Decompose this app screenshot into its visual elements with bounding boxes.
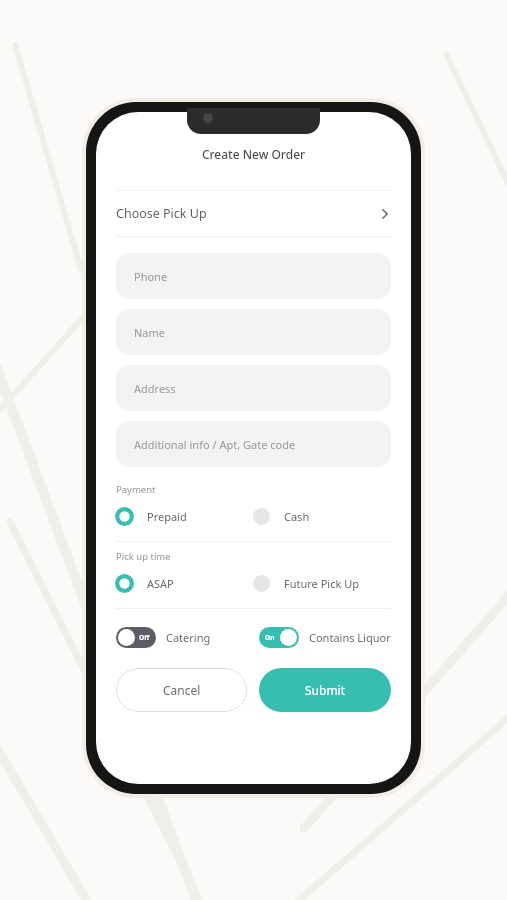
staticText: Additional info / Apt, Gate code [134, 437, 296, 452]
staticText: Pick up time [116, 550, 171, 563]
button[interactable]: Prepaid [116, 502, 253, 531]
other: Off [116, 627, 156, 648]
button[interactable]: Phone [116, 253, 391, 299]
staticText: Choose Pick Up [116, 205, 207, 222]
button[interactable]: Choose Pick Up [96, 191, 411, 236]
button[interactable]: Cancel [116, 668, 247, 712]
staticText: On [265, 633, 275, 642]
staticText: Cancel [163, 682, 201, 698]
button[interactable]: Additional info / Apt, Gate code [116, 421, 391, 467]
staticText: Phone [134, 269, 168, 284]
staticText: Cash [284, 509, 310, 524]
staticText: Catering [166, 630, 211, 645]
staticText: Prepaid [147, 509, 187, 524]
staticText: Off [139, 633, 150, 642]
button[interactable]: Off [116, 627, 211, 648]
staticText: Future Pick Up [284, 576, 359, 591]
staticText: Create New Order [96, 146, 411, 162]
staticText: Submit [305, 682, 346, 698]
staticText: Address [134, 381, 176, 396]
button[interactable]: Future Pick Up [253, 569, 391, 598]
button[interactable]: Address [116, 365, 391, 411]
button[interactable]: On [259, 627, 391, 648]
button[interactable]: Submit [259, 668, 391, 712]
other: On [259, 627, 299, 648]
staticText: ASAP [147, 576, 174, 591]
staticText: Name [134, 325, 166, 340]
button[interactable]: Cash [253, 502, 391, 531]
button[interactable]: Name [116, 309, 391, 355]
staticText: Payment [116, 483, 156, 496]
button[interactable]: ASAP [116, 569, 253, 598]
staticText: Contains Liquor [309, 630, 391, 645]
